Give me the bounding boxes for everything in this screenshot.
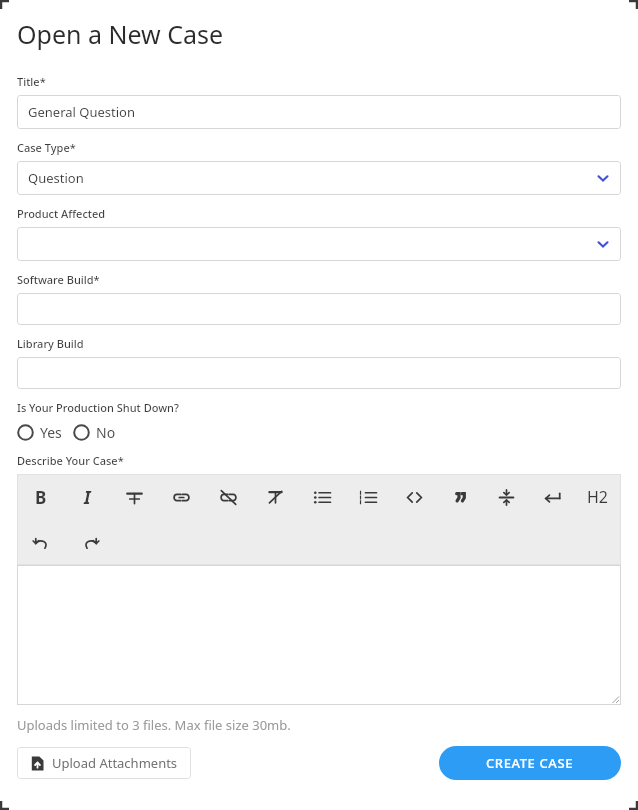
staticText: Software Build* [17, 272, 100, 287]
staticText: Describe Your Case* [17, 453, 124, 468]
button[interactable]: Clear formatting [252, 474, 299, 520]
button[interactable]: Undo [17, 520, 66, 564]
button[interactable]: Numbered list [345, 474, 391, 520]
button[interactable]: Page break [483, 474, 529, 520]
button[interactable]: Italic [64, 474, 111, 520]
button[interactable]: Upload Attachments [17, 747, 191, 779]
button[interactable]: Strikethrough [111, 474, 158, 520]
button[interactable]: Link [158, 474, 205, 520]
staticText: B [35, 486, 47, 509]
staticText: General Question [28, 103, 135, 121]
button[interactable]: Code [391, 474, 437, 520]
staticText: Question [28, 169, 84, 187]
staticText: I [84, 486, 91, 509]
staticText: CREATE CASE [486, 754, 574, 772]
staticText: No [96, 423, 116, 442]
button[interactable] [17, 357, 621, 389]
staticText: Product Affected [17, 206, 106, 221]
button[interactable]: Question [17, 161, 621, 195]
button[interactable]: General Question [17, 95, 621, 129]
button[interactable]: No [73, 421, 116, 444]
staticText: Open a New Case [17, 17, 224, 51]
staticText: Upload Attachments [52, 754, 178, 772]
staticText: Yes [40, 423, 62, 442]
staticText: H2 [587, 486, 609, 508]
button[interactable]: Redo [66, 520, 115, 564]
button[interactable]: Bulleted list [299, 474, 345, 520]
staticText: Case Type* [17, 140, 76, 155]
button[interactable]: Line break [529, 474, 575, 520]
button[interactable]: Unlink [205, 474, 252, 520]
button[interactable]: Yes [17, 421, 62, 444]
button[interactable] [17, 565, 621, 705]
button[interactable]: Quote [437, 474, 483, 520]
staticText: Is Your Production Shut Down? [17, 400, 179, 415]
button[interactable] [17, 227, 621, 261]
button[interactable] [17, 293, 621, 325]
button[interactable]: Heading 2 [575, 474, 621, 520]
button[interactable]: CREATE CASE [439, 746, 621, 780]
staticText: Library Build [17, 336, 84, 351]
staticText: Title* [17, 74, 46, 89]
button[interactable]: Bold [17, 474, 64, 520]
staticText: Uploads limited to 3 files. Max file siz… [17, 716, 291, 734]
